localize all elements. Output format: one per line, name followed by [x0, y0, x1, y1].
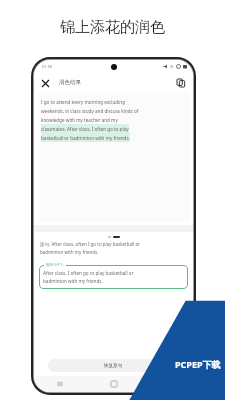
- staticText: badminton with my friends.: [43, 278, 103, 284]
- staticText: 润色结果: [59, 79, 81, 86]
- staticText: basketball or badminton with my friends.: [41, 135, 130, 141]
- staticText: knowledge with my teacher and my: [41, 117, 118, 123]
- staticText: weekends, in class study and discuss kin…: [41, 108, 139, 114]
- button[interactable]: 恢复原句: [48, 359, 179, 372]
- button[interactable]: Close: [38, 76, 52, 90]
- staticText: After class, I often go to play basketba…: [43, 270, 134, 276]
- button[interactable]: Home: [108, 378, 120, 390]
- staticText: I go to attend every morning excluding: [41, 99, 125, 105]
- staticText: classmates. After class, I often go to p…: [41, 126, 129, 132]
- button[interactable]: Recents: [54, 378, 66, 390]
- button[interactable]: I go to attend every morning excluding: [37, 92, 190, 222]
- staticText: 原句: After class, often I go to play bask…: [40, 241, 141, 247]
- button[interactable]: Copy: [174, 76, 188, 90]
- staticText: 恢复原句: [104, 363, 123, 369]
- staticText: 01:50: [42, 64, 53, 69]
- staticText: %: [170, 64, 174, 69]
- staticText: 推荐句子1:: [46, 262, 64, 267]
- staticText: badminton with my friends.: [40, 249, 99, 255]
- staticText: PCPEP下载: [175, 358, 221, 370]
- staticText: 锦上添花的润色: [60, 18, 165, 37]
- button[interactable]: After class, I often go to play basketba…: [39, 265, 188, 289]
